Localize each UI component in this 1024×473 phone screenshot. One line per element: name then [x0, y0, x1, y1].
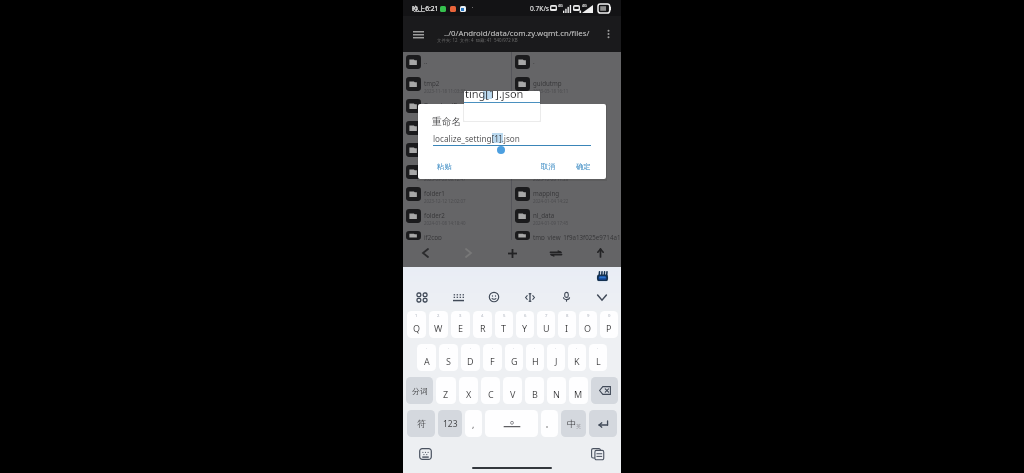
button[interactable]: 符	[407, 410, 435, 437]
staticText: logs	[424, 145, 437, 153]
staticText: H	[532, 355, 539, 367]
button[interactable]: Backspace	[591, 377, 618, 404]
button[interactable]: 5	[495, 311, 513, 338]
button[interactable]: ·	[568, 344, 586, 371]
button[interactable]: B	[525, 377, 544, 404]
button[interactable]: cache	[403, 165, 511, 187]
staticText: mapping	[533, 189, 560, 197]
button[interactable]: V	[503, 377, 522, 404]
staticText: nl_data	[533, 211, 555, 219]
button[interactable]: M	[569, 377, 588, 404]
staticText: 4G	[558, 3, 563, 8]
button[interactable]: tmp2	[403, 77, 511, 99]
button[interactable]: 确定	[574, 159, 593, 174]
button[interactable]: 取消	[539, 159, 558, 174]
button[interactable]: Sort	[543, 240, 569, 266]
button[interactable]: ·	[526, 344, 544, 371]
button[interactable]: update	[403, 121, 511, 143]
button[interactable]: New folder	[499, 240, 525, 266]
button[interactable]: C	[481, 377, 500, 404]
button[interactable]: ·	[483, 344, 502, 371]
button[interactable]: Z	[436, 377, 456, 404]
staticText: update	[424, 123, 445, 131]
button[interactable]: folder2	[403, 209, 511, 231]
staticText: O	[584, 322, 592, 334]
button[interactable]: 2	[429, 311, 448, 338]
staticText: 确定	[576, 162, 591, 171]
staticText: 6	[524, 313, 527, 319]
button[interactable]: guidutmp	[512, 77, 621, 99]
button[interactable]: tmp_view_1f9a13f025e9714a12e0ef	[512, 231, 621, 240]
staticText: E	[458, 322, 464, 334]
staticText: 中	[567, 418, 576, 429]
staticText: 2023-12-18 09:21:10	[424, 132, 466, 138]
button[interactable]: 123	[438, 410, 462, 437]
button[interactable]: X	[459, 377, 478, 404]
button[interactable]: 7	[537, 311, 555, 338]
button[interactable]: Cursor control	[519, 286, 541, 308]
button[interactable]: nl_data	[512, 209, 621, 231]
button[interactable]: folder1	[403, 187, 511, 209]
button[interactable]: 1	[407, 311, 426, 338]
button[interactable]: Emoji	[483, 286, 505, 308]
button[interactable]: 3	[451, 311, 470, 338]
button[interactable]: ·	[547, 344, 565, 371]
button[interactable]: theme	[512, 99, 621, 121]
button[interactable]: 4	[473, 311, 492, 338]
button[interactable]: .	[512, 55, 621, 77]
button[interactable]: temp	[512, 165, 621, 187]
button[interactable]: Keyboard layout	[447, 286, 469, 308]
button[interactable]: 分词	[406, 377, 433, 404]
staticText: T	[501, 322, 507, 334]
button[interactable]: 中	[561, 410, 586, 437]
button[interactable]: ·	[505, 344, 523, 371]
staticText: ·	[534, 346, 536, 352]
button[interactable]: ·	[589, 344, 607, 371]
button[interactable]: 9	[579, 311, 597, 338]
button[interactable]: logs	[403, 143, 511, 165]
button[interactable]: Up	[587, 240, 613, 266]
button[interactable]: ..	[403, 55, 511, 77]
button[interactable]: ·	[417, 344, 436, 371]
staticText: L	[596, 355, 601, 367]
button[interactable]: ,	[465, 410, 482, 437]
button[interactable]: 。	[541, 410, 558, 437]
staticText: V	[510, 388, 516, 400]
button[interactable]: N	[547, 377, 566, 404]
button[interactable]: Apps	[411, 286, 433, 308]
button[interactable]: 0	[600, 311, 618, 338]
button[interactable]: DownloadProvider	[403, 99, 511, 121]
button[interactable]: 6	[516, 311, 534, 338]
button[interactable]: mapping	[512, 187, 621, 209]
staticText: theme	[533, 101, 552, 109]
button[interactable]: Switch keyboard	[419, 448, 432, 460]
staticText: guidutmp	[533, 79, 562, 87]
staticText: 文件夹: 12 文件: 4 隐藏: 41 540/972 KB	[437, 37, 518, 43]
button[interactable]: 粘贴	[435, 159, 454, 174]
button[interactable]: More options	[598, 16, 618, 52]
button[interactable]: Voice input	[555, 286, 577, 308]
button[interactable]: db	[512, 143, 621, 165]
button[interactable]: Forward	[455, 240, 481, 266]
button[interactable]: pics	[512, 121, 621, 143]
staticText: ·	[492, 346, 494, 352]
button[interactable]: Space	[485, 410, 538, 437]
staticText: ·	[597, 346, 599, 352]
staticText: ../0/Android/data/com.zy.wqmt.cn/files/	[444, 28, 590, 39]
button[interactable]: Back	[412, 240, 438, 266]
button[interactable]: 8	[558, 311, 576, 338]
button[interactable]: IME logo	[595, 270, 610, 284]
staticText: 符	[417, 418, 426, 429]
button[interactable]: Hide keyboard	[591, 286, 613, 308]
staticText: 0	[608, 313, 611, 319]
button[interactable]: Clipboard	[591, 448, 604, 460]
button[interactable]: Menu	[407, 16, 429, 52]
button[interactable]: ·	[461, 344, 480, 371]
button[interactable]: Enter	[589, 410, 617, 437]
staticText: localize_setting[1].json	[433, 133, 520, 144]
button[interactable]: if2cpp	[403, 231, 511, 240]
staticText: if2cpp	[424, 233, 442, 241]
button[interactable]: ·	[439, 344, 458, 371]
